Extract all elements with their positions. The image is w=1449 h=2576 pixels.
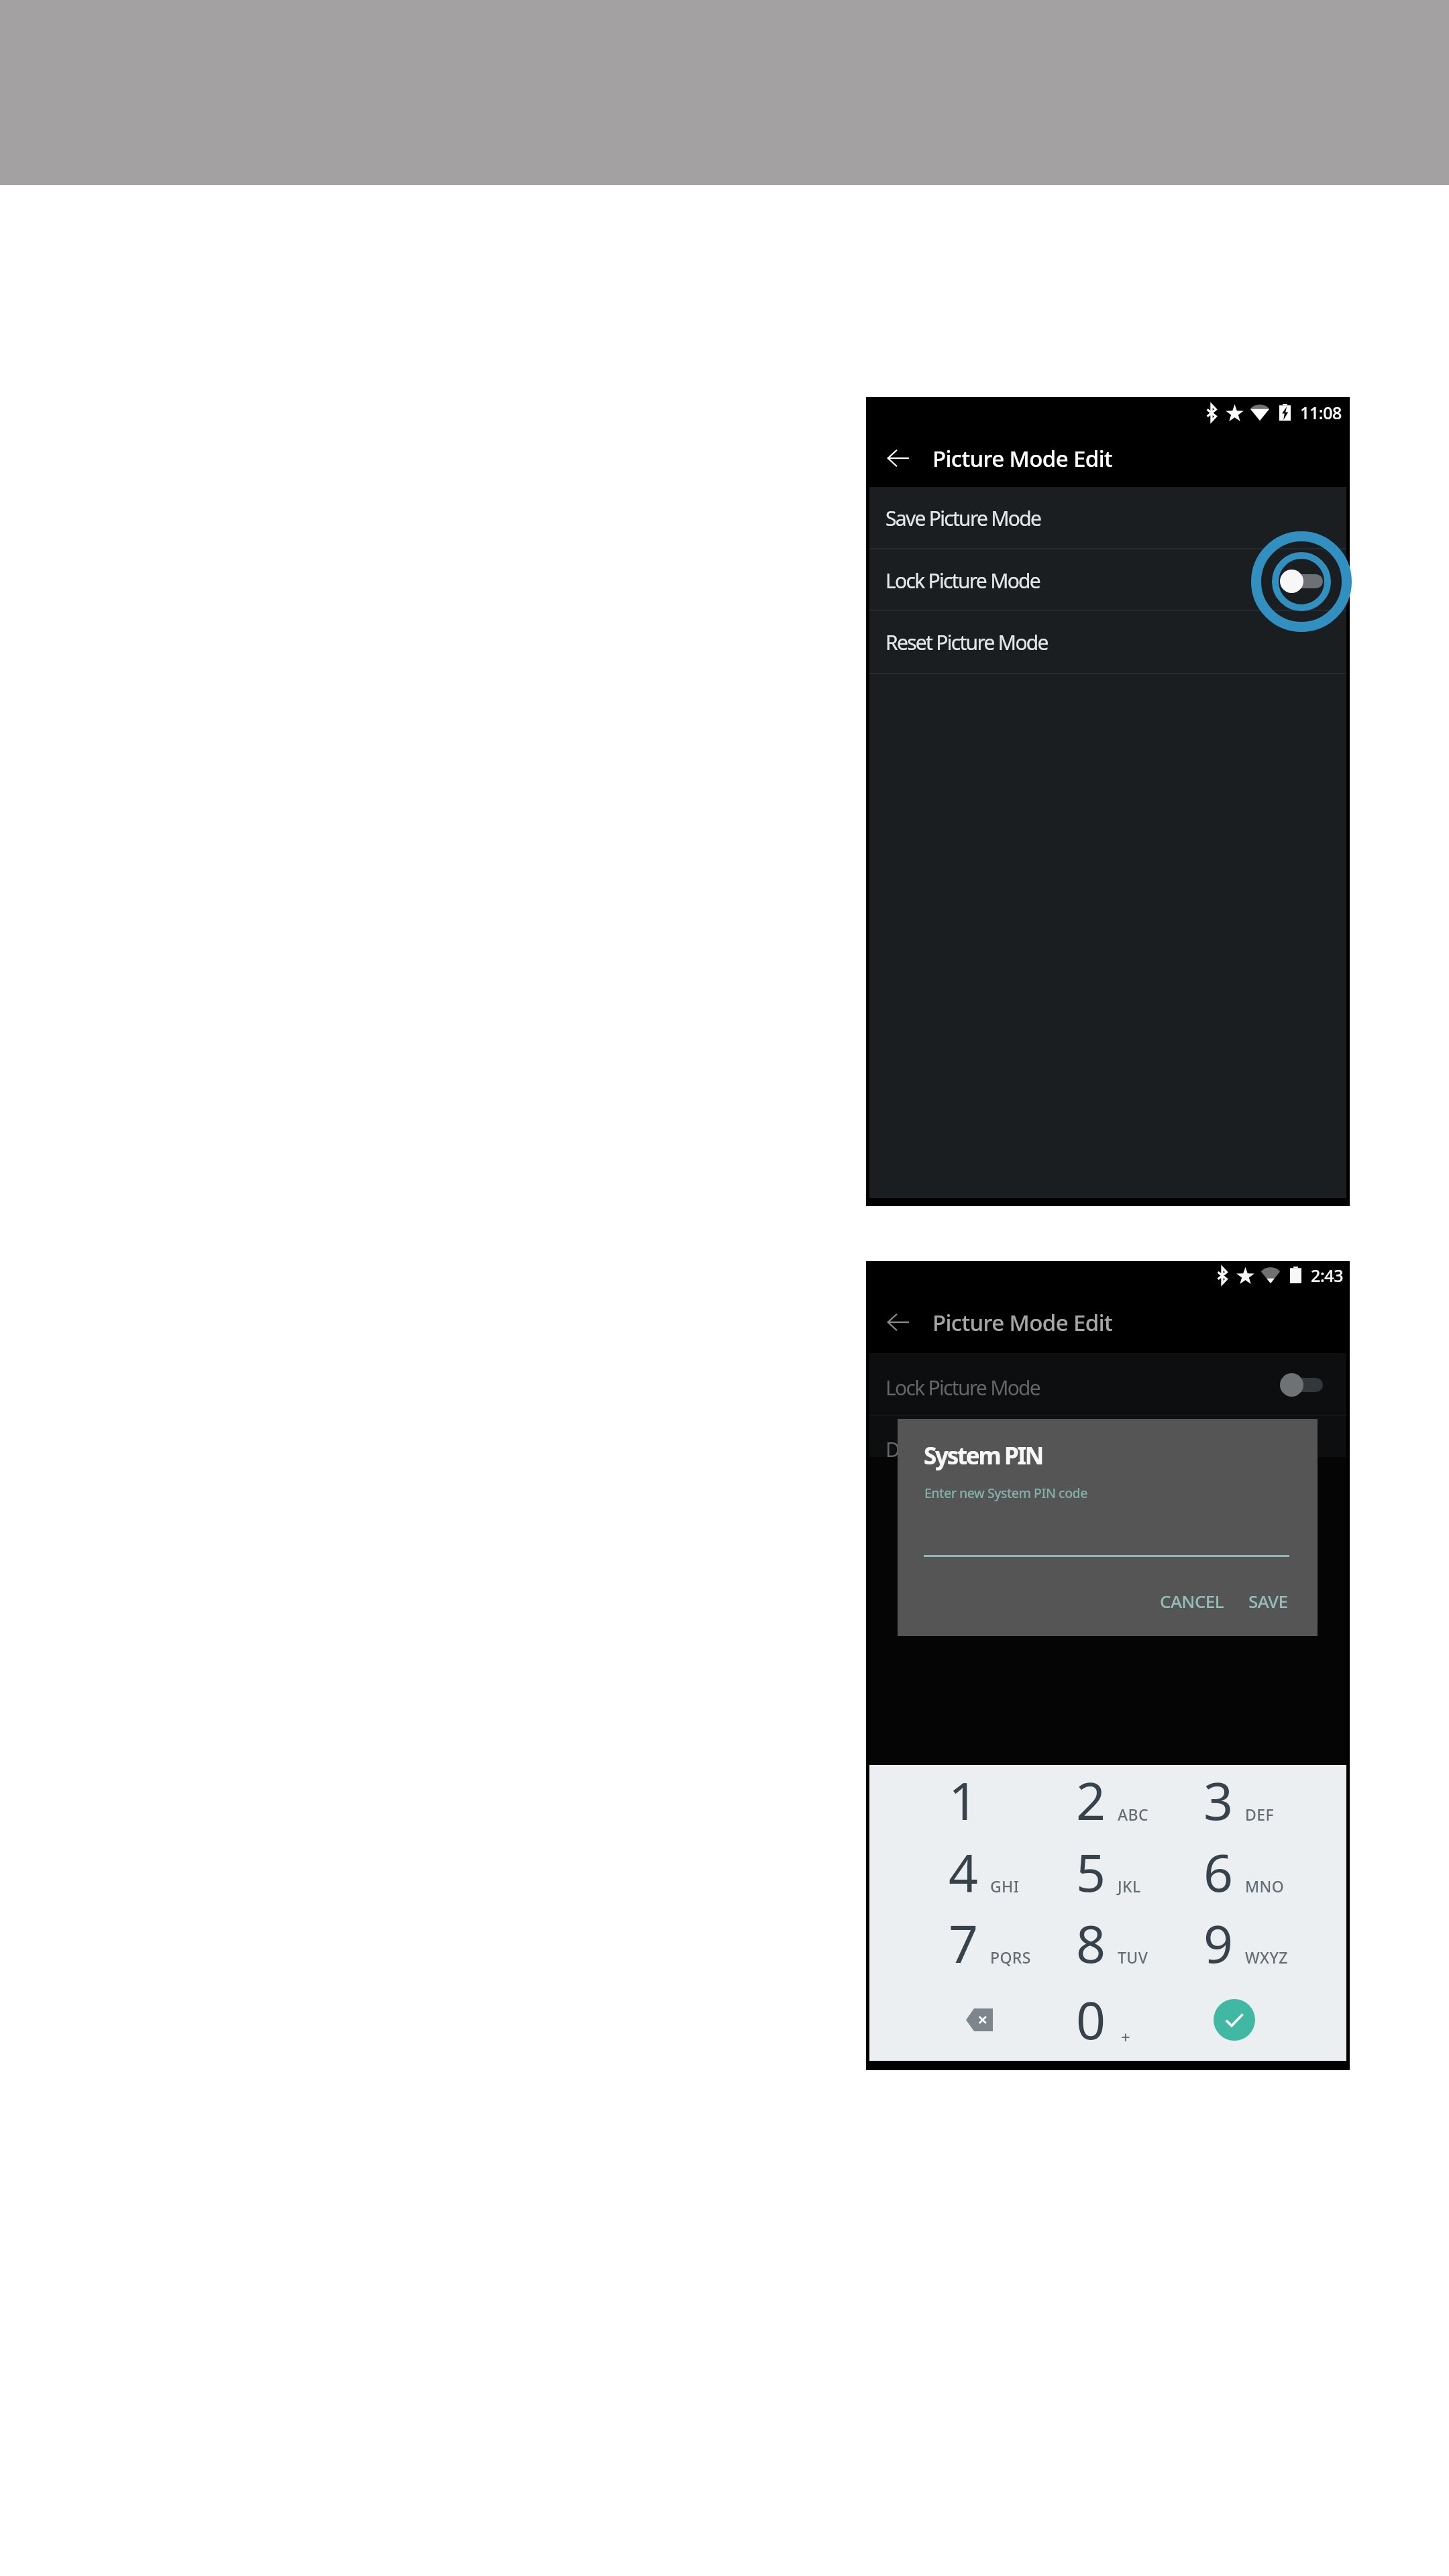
staticText: Enter new System PIN code: [924, 1484, 1087, 1502]
staticText: PQRS: [990, 1947, 1031, 1968]
button[interactable]: 2: [1053, 1764, 1180, 1837]
staticText: 2: [1076, 1765, 1106, 1835]
staticText: SAVE: [1248, 1589, 1288, 1613]
button[interactable]: Confirm: [1180, 1983, 1307, 2057]
other: Lock Picture Mode toggle: [1262, 1353, 1336, 1413]
staticText: 0: [1076, 1984, 1106, 2055]
staticText: +: [1121, 2026, 1130, 2048]
staticText: GHI: [990, 1876, 1020, 1896]
staticText: 1: [949, 1765, 979, 1835]
staticText: Lock Picture Mode: [885, 1374, 1040, 1401]
staticText: 9: [1203, 1908, 1234, 1978]
button[interactable]: 5: [1053, 1835, 1180, 1909]
staticText: 11:08: [1300, 401, 1342, 423]
staticText: ABC: [1118, 1804, 1148, 1825]
staticText: 8: [1076, 1908, 1106, 1978]
button[interactable]: Lock Picture Mode: [869, 549, 1346, 611]
staticText: 6: [1203, 1837, 1234, 1907]
staticText: CANCEL: [1160, 1589, 1224, 1613]
staticText: 3: [1203, 1765, 1234, 1835]
button[interactable]: 0: [1053, 1983, 1180, 2057]
button[interactable]: Back: [875, 1299, 921, 1345]
button[interactable]: 8: [1053, 1907, 1180, 1980]
staticText: D: [885, 1436, 900, 1463]
staticText: MNO: [1245, 1876, 1285, 1896]
staticText: Save Picture Mode: [885, 504, 1041, 532]
staticText: System PIN: [924, 1440, 1042, 1472]
button[interactable]: 9: [1180, 1907, 1307, 1980]
staticText: 7: [949, 1908, 979, 1978]
button[interactable]: 3: [1180, 1764, 1307, 1837]
button[interactable]: Reset Picture Mode: [869, 611, 1346, 673]
staticText: 2:43: [1311, 1264, 1344, 1285]
button[interactable]: Save Picture Mode: [869, 487, 1346, 549]
button[interactable]: 4: [925, 1835, 1053, 1909]
staticText: Picture Mode Edit: [932, 443, 1113, 474]
staticText: Reset Picture Mode: [885, 629, 1048, 656]
staticText: Picture Mode Edit: [932, 1307, 1113, 1338]
button[interactable]: 6: [1180, 1835, 1307, 1909]
staticText: TUV: [1118, 1947, 1148, 1968]
button[interactable]: 1: [925, 1764, 1053, 1837]
staticText: JKL: [1118, 1876, 1141, 1896]
button[interactable]: Back: [875, 435, 921, 481]
button[interactable]: CANCEL: [1149, 1580, 1230, 1620]
staticText: DEF: [1245, 1804, 1274, 1825]
button[interactable]: Lock Picture Mode: [869, 1353, 1346, 1415]
staticText: WXYZ: [1245, 1947, 1288, 1968]
button[interactable]: D: [869, 1416, 1346, 1478]
other: Lock Picture Mode toggle: [1262, 550, 1336, 610]
button[interactable]: Delete: [925, 1983, 1053, 2057]
button[interactable]: SAVE: [1238, 1580, 1297, 1620]
staticText: Lock Picture Mode: [885, 567, 1040, 594]
staticText: 4: [949, 1837, 979, 1907]
button[interactable]: 7: [925, 1907, 1053, 1980]
staticText: 5: [1076, 1837, 1106, 1907]
